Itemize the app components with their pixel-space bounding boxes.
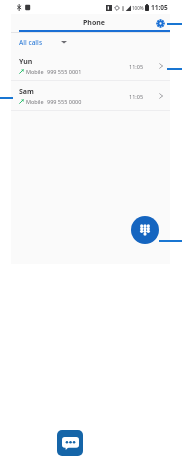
button[interactable]: Open dial pad: [131, 216, 159, 244]
staticText: All calls: [19, 38, 43, 47]
button[interactable]: Sam: [11, 81, 170, 111]
staticText: Sam: [19, 87, 34, 97]
button[interactable]: Call details: [156, 91, 166, 101]
staticText: Mobile: [26, 68, 44, 75]
staticText: 999 555 0000: [47, 98, 82, 105]
button[interactable]: All calls: [11, 33, 170, 51]
staticText: 11:05: [129, 63, 144, 70]
staticText: 11:05: [129, 93, 144, 100]
button[interactable]: Settings: [153, 16, 167, 30]
staticText: Mobile: [26, 98, 44, 105]
staticText: 999 555 0001: [47, 68, 82, 75]
staticText: Phone: [83, 18, 106, 28]
staticText: Yun: [19, 57, 33, 67]
button[interactable]: Phone: [19, 14, 170, 32]
button[interactable]: Yun: [11, 51, 170, 81]
staticText: 100%: [132, 5, 144, 11]
button[interactable]: Messages app: [57, 430, 83, 456]
staticText: 11:05: [151, 3, 168, 12]
button[interactable]: Call details: [156, 61, 166, 71]
